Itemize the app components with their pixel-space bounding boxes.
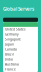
staticText: Global Servers xyxy=(3,6,34,12)
staticText: Brazil xyxy=(5,52,14,57)
button[interactable]: Australia xyxy=(3,62,38,67)
button[interactable]: India xyxy=(3,57,38,62)
staticText: Germany xyxy=(5,32,19,37)
button[interactable]: Japan xyxy=(3,42,38,47)
button[interactable]: United States xyxy=(3,27,38,32)
staticText: Singapore xyxy=(5,37,21,42)
button[interactable]: Singapore xyxy=(3,37,38,42)
button[interactable]: Canada xyxy=(3,47,38,52)
button[interactable]: Brazil xyxy=(3,52,38,57)
staticText: Australia xyxy=(5,62,19,67)
staticText: France xyxy=(5,67,16,72)
button[interactable]: Germany xyxy=(3,32,38,37)
staticText: Japan xyxy=(5,42,14,47)
staticText: India xyxy=(5,57,13,62)
button[interactable]: France xyxy=(3,67,38,72)
staticText: United States xyxy=(5,27,26,32)
staticText: Canada xyxy=(5,47,17,52)
